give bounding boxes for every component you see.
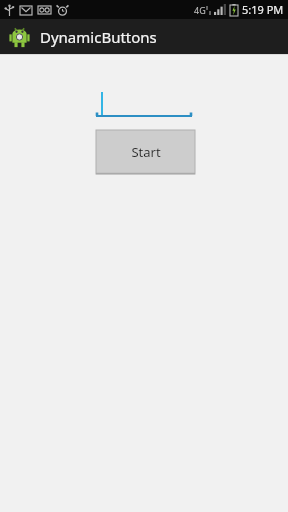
staticText: 5:19 PM (242, 2, 284, 17)
staticText: DynamicButtons (40, 27, 157, 47)
staticText: Start (131, 143, 161, 161)
button[interactable]: Text input field (96, 89, 192, 118)
button[interactable]: Start (96, 130, 195, 174)
staticText: 4G (194, 4, 206, 16)
